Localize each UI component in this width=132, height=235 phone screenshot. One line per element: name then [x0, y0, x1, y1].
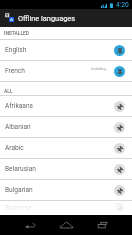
- staticText: Offline languages: [18, 14, 76, 23]
- staticText: Installing…: [91, 67, 108, 71]
- staticText: ALL: [4, 88, 13, 94]
- staticText: 4:20: [116, 1, 129, 9]
- staticText: Albanian: [5, 123, 31, 131]
- button[interactable]: Remove offline language: [114, 45, 125, 56]
- button[interactable]: Download offline language: [114, 143, 125, 154]
- button[interactable]: Remove offline language: [114, 66, 125, 77]
- button[interactable]: Download offline language: [114, 164, 125, 175]
- button[interactable]: Afrikaans: [0, 96, 132, 117]
- button[interactable]: French: [0, 61, 132, 82]
- button[interactable]: Burmese: [0, 201, 132, 215]
- staticText: Arabic: [5, 144, 24, 152]
- button[interactable]: Back: [14, 215, 46, 235]
- button[interactable]: Bulgarian: [0, 180, 132, 201]
- button[interactable]: Download offline language: [114, 101, 125, 112]
- staticText: French: [5, 67, 25, 75]
- button[interactable]: Download offline language: [114, 185, 125, 196]
- button[interactable]: Arabic: [0, 138, 132, 159]
- staticText: Bulgarian: [5, 186, 33, 194]
- button[interactable]: Belarusian: [0, 159, 132, 180]
- button[interactable]: Home: [50, 215, 82, 235]
- button[interactable]: Download offline language: [114, 122, 125, 133]
- button[interactable]: Albanian: [0, 117, 132, 138]
- button[interactable]: Recent apps: [86, 215, 118, 235]
- staticText: English: [5, 46, 27, 54]
- staticText: Belarusian: [5, 165, 36, 173]
- button[interactable]: Offline languages: [0, 9, 132, 27]
- button[interactable]: Download offline language: [114, 203, 125, 214]
- button[interactable]: English: [0, 40, 132, 61]
- staticText: Afrikaans: [5, 102, 33, 110]
- staticText: INSTALLED: [4, 30, 30, 36]
- staticText: Burmese: [5, 204, 32, 212]
